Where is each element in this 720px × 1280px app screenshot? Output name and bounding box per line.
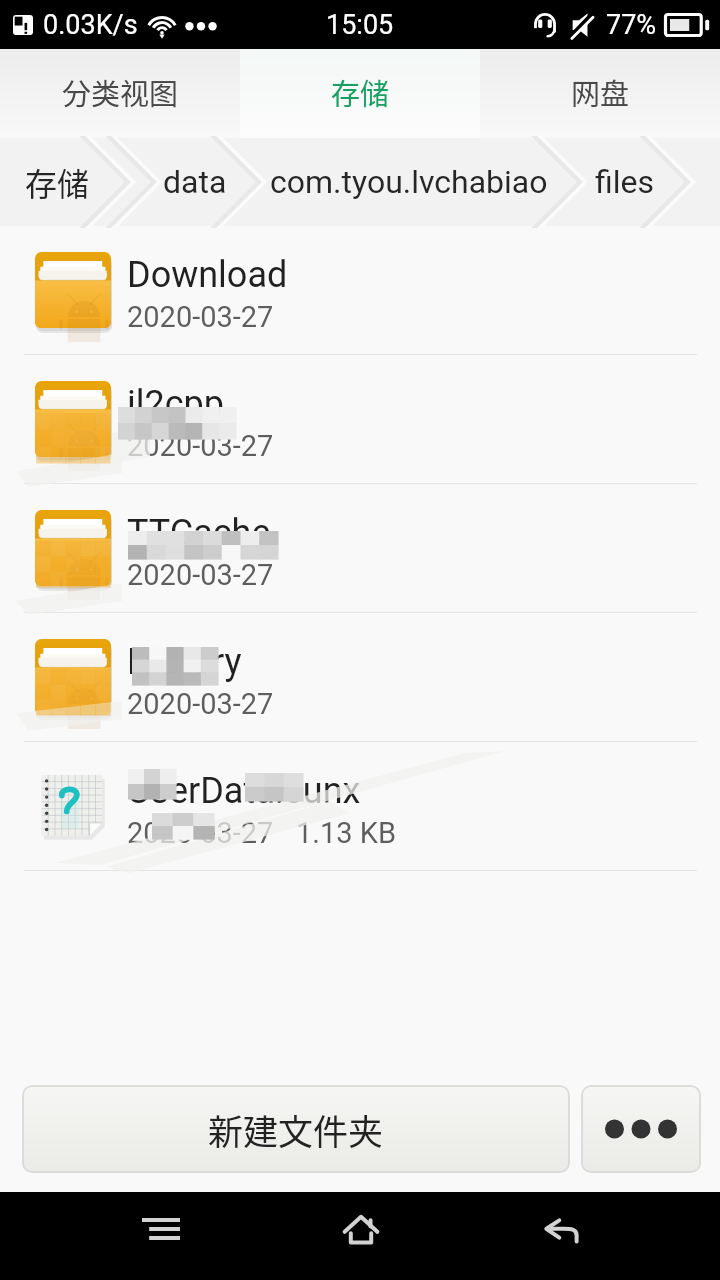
staticText: 0.03K/s: [43, 9, 138, 41]
button[interactable]: Home: [310, 1192, 410, 1280]
staticText: 分类视图: [62, 71, 179, 113]
staticText: TTCache: [127, 512, 271, 554]
staticText: 存储: [25, 159, 90, 205]
staticText: il2cpp: [127, 383, 225, 425]
staticText: 网盘: [571, 71, 630, 113]
staticText: 1.13 KB: [296, 816, 396, 850]
button[interactable]: More options: [581, 1085, 701, 1173]
button[interactable]: Back: [500, 1192, 600, 1280]
staticText: 2020-03-27: [127, 558, 274, 592]
button[interactable]: TTCache: [0, 484, 720, 612]
staticText: data: [163, 163, 227, 201]
button[interactable]: Download: [0, 226, 720, 354]
button[interactable]: com.tyou.lvchabiao: [270, 138, 548, 226]
staticText: com.tyou.lvchabiao: [270, 163, 548, 201]
button[interactable]: 网盘: [480, 49, 720, 138]
button[interactable]: 新建文件夹: [22, 1085, 570, 1173]
button[interactable]: 存储: [25, 138, 90, 226]
staticText: 2020-03-27: [127, 300, 274, 334]
staticText: UserData.sunx: [127, 770, 361, 812]
staticText: 2020-03-27: [127, 816, 274, 850]
staticText: 77%: [606, 9, 657, 41]
button[interactable]: Menu: [120, 1192, 220, 1280]
staticText: 存储: [331, 71, 390, 113]
button[interactable]: data: [163, 138, 227, 226]
staticText: History: [127, 641, 242, 683]
staticText: 2020-03-27: [127, 687, 274, 721]
staticText: 15:05: [326, 9, 394, 41]
staticText: files: [595, 163, 654, 201]
button[interactable]: UserData.sunx: [0, 742, 720, 870]
button[interactable]: 分类视图: [0, 49, 240, 138]
staticText: Download: [127, 254, 288, 296]
button[interactable]: files: [595, 138, 654, 226]
button[interactable]: il2cpp: [0, 355, 720, 483]
staticText: 2020-03-27: [127, 429, 274, 463]
staticText: 新建文件夹: [208, 1104, 384, 1155]
button[interactable]: 存储: [240, 49, 480, 138]
button[interactable]: History: [0, 613, 720, 741]
